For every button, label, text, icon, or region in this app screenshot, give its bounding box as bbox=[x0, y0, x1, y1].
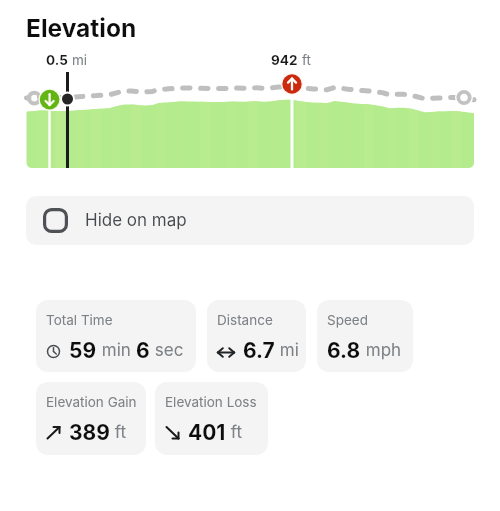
other: Hide on map checkbox bbox=[43, 208, 68, 233]
button[interactable]: Elevation Gain bbox=[36, 382, 146, 455]
staticText: Elevation bbox=[26, 13, 137, 43]
staticText: Total Time bbox=[46, 312, 113, 328]
staticText: mph bbox=[361, 340, 402, 361]
staticText: Distance bbox=[217, 312, 273, 328]
staticText: 401 bbox=[188, 420, 226, 445]
staticText: Hide on map bbox=[85, 210, 187, 231]
staticText: Elevation Loss bbox=[165, 394, 257, 410]
staticText: 0.5 bbox=[46, 52, 68, 68]
staticText: 389 bbox=[69, 420, 110, 445]
button[interactable]: Speed bbox=[317, 300, 413, 372]
staticText: Speed bbox=[327, 312, 368, 328]
staticText: 6 bbox=[136, 338, 150, 363]
staticText: mi bbox=[275, 340, 299, 361]
staticText: ft bbox=[226, 422, 243, 443]
button[interactable]: Distance bbox=[207, 300, 306, 372]
button[interactable]: Hide on map checkbox bbox=[26, 196, 474, 245]
staticText: 6.7 bbox=[243, 338, 275, 363]
staticText: Elevation Gain bbox=[46, 394, 137, 410]
staticText: ft bbox=[110, 422, 127, 443]
button[interactable]: Total Time bbox=[36, 300, 196, 372]
staticText: 942 bbox=[271, 52, 298, 68]
staticText: ft bbox=[302, 52, 311, 68]
button[interactable]: Elevation Loss bbox=[155, 382, 268, 455]
staticText: min bbox=[97, 340, 136, 361]
staticText: mi bbox=[72, 52, 88, 68]
staticText: sec bbox=[150, 340, 184, 361]
staticText: 6.8 bbox=[327, 338, 361, 363]
staticText: 59 bbox=[69, 338, 97, 363]
